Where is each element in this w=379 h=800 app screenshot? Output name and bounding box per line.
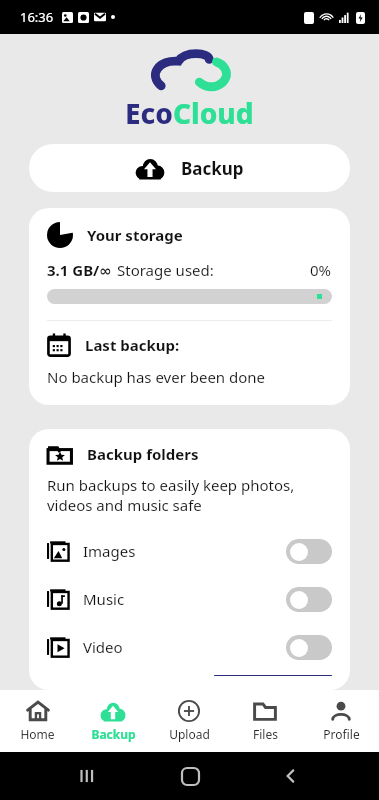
button[interactable]: Back (278, 763, 304, 789)
staticText: 0% (310, 260, 332, 280)
staticText: 16:36 (20, 8, 54, 26)
staticText: No backup has ever been done (47, 367, 266, 387)
staticText: Backup (91, 726, 136, 742)
button[interactable]: Upload (151, 693, 227, 749)
staticText: Backup folders (87, 444, 199, 464)
staticText: Profile (323, 726, 360, 742)
button[interactable]: Profile (303, 693, 379, 749)
button[interactable]: Home (0, 693, 75, 749)
staticText: 3.1 GB/∞ (47, 260, 112, 280)
staticText: Backup (181, 157, 244, 180)
staticText: Your storage (87, 225, 183, 245)
button[interactable]: Backup (29, 144, 350, 192)
button[interactable]: Select (214, 675, 332, 676)
staticText: Cloud (173, 94, 254, 132)
button[interactable]: Files (227, 693, 303, 749)
staticText: Files (253, 726, 278, 742)
button[interactable]: Images (47, 527, 332, 575)
staticText: Video (83, 637, 123, 657)
staticText: Run backups to easily keep photos, video… (47, 475, 332, 515)
staticText: Images (83, 541, 136, 561)
button[interactable]: Backup (75, 693, 151, 749)
staticText: Last backup: (85, 335, 180, 355)
button[interactable]: Video (47, 623, 332, 671)
staticText: Upload (169, 726, 210, 742)
button[interactable]: Music (47, 575, 332, 623)
staticText: Eco (125, 94, 173, 132)
button[interactable]: Home (177, 763, 203, 789)
staticText: Music (83, 589, 125, 609)
staticText: Home (20, 726, 55, 742)
button[interactable]: Recent apps (75, 763, 101, 789)
staticText: Storage used: (117, 260, 214, 280)
